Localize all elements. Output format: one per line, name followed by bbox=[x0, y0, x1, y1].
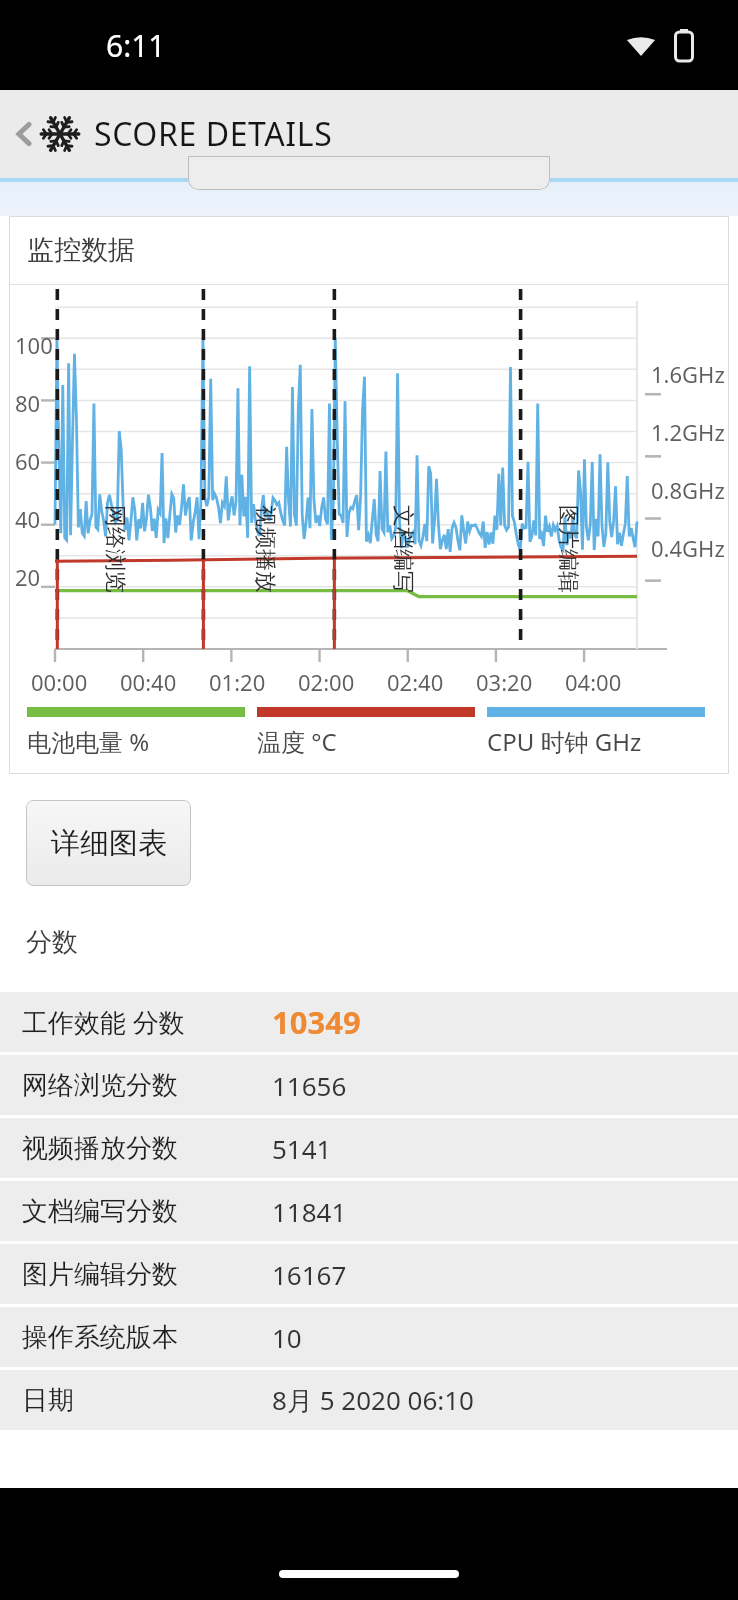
staticText: 电池电量 % bbox=[27, 725, 150, 758]
staticText: 网络浏览 bbox=[101, 505, 129, 593]
staticText: 图片编辑 bbox=[554, 505, 582, 593]
staticText: 100 bbox=[15, 330, 53, 360]
staticText: 02:00 bbox=[298, 667, 355, 697]
staticText: 文档编写 bbox=[389, 505, 417, 593]
button[interactable]: 操作系统版本 bbox=[0, 1307, 738, 1367]
staticText: 04:00 bbox=[565, 667, 622, 697]
button[interactable]: 工作效能 分数 bbox=[0, 992, 738, 1052]
staticText: 01:20 bbox=[209, 667, 266, 697]
staticText: 1.2GHz bbox=[651, 417, 725, 447]
staticText: 10349 bbox=[272, 1001, 361, 1043]
staticText: SCORE DETAILS bbox=[94, 112, 333, 156]
staticText: 0.8GHz bbox=[651, 475, 725, 505]
staticText: 0.4GHz bbox=[651, 533, 725, 563]
staticText: 10 bbox=[272, 1320, 302, 1355]
staticText: 视频播放 bbox=[251, 505, 279, 593]
staticText: 00:40 bbox=[120, 667, 177, 697]
button[interactable]: 日期 bbox=[0, 1370, 738, 1430]
staticText: 1.6GHz bbox=[651, 359, 725, 389]
staticText: 工作效能 分数 bbox=[22, 1004, 272, 1040]
button[interactable]: 视频播放分数 bbox=[0, 1118, 738, 1178]
staticText: 02:40 bbox=[387, 667, 444, 697]
button[interactable]: 网络浏览分数 bbox=[0, 1055, 738, 1115]
staticText: 11841 bbox=[272, 1194, 347, 1229]
staticText: 5141 bbox=[272, 1131, 332, 1166]
staticText: 8月 5 2020 06:10 bbox=[272, 1382, 474, 1418]
staticText: CPU 时钟 GHz bbox=[487, 725, 642, 758]
staticText: 40 bbox=[15, 504, 41, 534]
staticText: 温度 °C bbox=[257, 725, 337, 758]
button[interactable]: 文档编写分数 bbox=[0, 1181, 738, 1241]
staticText: 文档编写分数 bbox=[22, 1195, 272, 1228]
staticText: 分数 bbox=[26, 926, 78, 959]
staticText: 日期 bbox=[22, 1384, 272, 1417]
staticText: 20 bbox=[15, 562, 41, 592]
staticText: 6:11 bbox=[106, 25, 166, 66]
button[interactable]: 详细图表 bbox=[26, 800, 191, 886]
staticText: 60 bbox=[15, 446, 41, 476]
staticText: 详细图表 bbox=[51, 825, 167, 862]
staticText: 图片编辑分数 bbox=[22, 1258, 272, 1291]
button[interactable]: 图片编辑分数 bbox=[0, 1244, 738, 1304]
staticText: 监控数据 bbox=[27, 233, 135, 267]
staticText: 11656 bbox=[272, 1068, 347, 1103]
button[interactable]: Back bbox=[0, 90, 738, 178]
staticText: 03:20 bbox=[476, 667, 533, 697]
staticText: 操作系统版本 bbox=[22, 1321, 272, 1354]
staticText: 00:00 bbox=[31, 667, 88, 697]
staticText: 网络浏览分数 bbox=[22, 1069, 272, 1102]
staticText: 80 bbox=[15, 388, 41, 418]
staticText: 16167 bbox=[272, 1257, 347, 1292]
other: Back bbox=[8, 118, 40, 150]
staticText: 视频播放分数 bbox=[22, 1132, 272, 1165]
